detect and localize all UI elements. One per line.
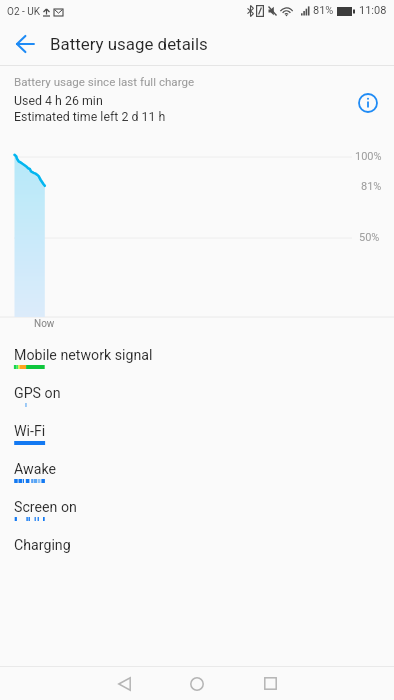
button[interactable]: Wi-Fi [0,417,394,455]
button[interactable]: Mobile network signal [0,341,394,379]
staticText: Screen on [14,499,77,516]
staticText: GPS on [14,385,61,402]
staticText: Charging [14,537,71,554]
staticText: 11:08 [359,4,387,17]
staticText: 81% [313,4,334,17]
staticText: 100% [355,150,382,163]
staticText: 50% [359,231,380,244]
button[interactable]: Back [104,667,144,700]
button[interactable]: Back [5,24,45,64]
staticText: Used 4 h 26 min [14,93,103,108]
button[interactable]: GPS on [0,379,394,417]
button[interactable]: Home [177,667,217,700]
staticText: Now [34,318,55,330]
staticText: 81% [361,180,382,193]
staticText: Mobile network signal [14,347,153,364]
button[interactable]: Charging [0,531,394,569]
staticText: Battery usage details [50,34,208,54]
staticText: O2 - UK [7,6,40,18]
button[interactable]: Info [355,90,381,116]
staticText: Battery usage since last full charge [14,75,195,89]
staticText: Awake [14,461,56,478]
staticText: Estimated time left 2 d 11 h [14,109,166,124]
button[interactable]: Recents [250,667,290,700]
staticText: Wi-Fi [14,423,46,440]
button[interactable]: Awake [0,455,394,493]
button[interactable]: Screen on [0,493,394,531]
